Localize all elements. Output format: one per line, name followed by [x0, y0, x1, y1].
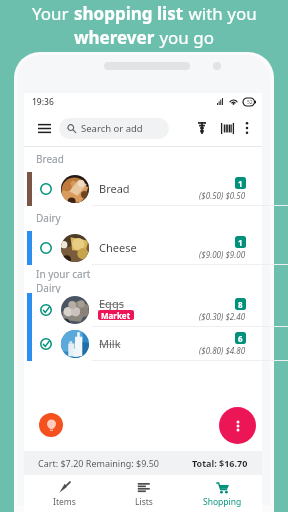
button[interactable]: Cheese — [24, 231, 262, 265]
button[interactable]: Search or add — [59, 118, 169, 139]
staticText: you go — [155, 26, 215, 49]
staticText: 8 — [238, 299, 243, 310]
staticText: Search or add — [81, 122, 143, 135]
button[interactable]: Menu — [36, 118, 52, 138]
button[interactable]: Shopping — [183, 477, 262, 512]
staticText: Dairy — [36, 211, 61, 225]
staticText: Cheese — [99, 240, 137, 255]
button[interactable]: Items — [24, 477, 104, 512]
staticText: shopping list — [74, 2, 184, 25]
staticText: In your cart — [36, 267, 91, 281]
staticText: 52 — [247, 99, 253, 106]
staticText: 19:36 — [32, 96, 54, 108]
staticText: ($0.30) $2.40 — [199, 311, 246, 322]
button[interactable]: Suggestions — [39, 413, 63, 437]
staticText: Eggs — [99, 296, 124, 311]
staticText: Milk — [99, 336, 121, 351]
button[interactable]: Sort — [194, 118, 210, 138]
staticText: ($9.00) $9.00 — [199, 249, 246, 260]
staticText: Total: $16.70 — [192, 457, 248, 469]
staticText: ($0.50) $0.50 — [199, 190, 246, 201]
staticText: Market — [101, 310, 131, 320]
staticText: with you — [184, 2, 257, 25]
staticText: 1 — [238, 178, 243, 189]
staticText: Bread — [99, 181, 130, 196]
staticText: Items — [53, 496, 76, 508]
button[interactable]: More options — [240, 118, 254, 138]
staticText: 6 — [238, 333, 243, 344]
staticText: Dairy — [36, 281, 61, 293]
staticText: ($0.80) $4.80 — [199, 345, 246, 356]
staticText: Lists — [135, 496, 153, 508]
staticText: 1 — [238, 237, 243, 248]
button[interactable]: Milk — [24, 327, 262, 361]
button[interactable]: More actions — [219, 407, 256, 444]
button[interactable]: Eggs — [24, 293, 262, 327]
button[interactable]: Lists — [104, 477, 183, 512]
button[interactable]: Bread — [24, 172, 262, 206]
button[interactable]: Scan barcode — [219, 118, 235, 138]
staticText: Bread — [36, 152, 64, 166]
staticText: Shopping — [203, 496, 242, 508]
staticText: wherever — [74, 26, 155, 49]
staticText: Cart: $7.20 Remaining: $9.50 — [38, 457, 159, 469]
staticText: Your — [32, 2, 74, 25]
